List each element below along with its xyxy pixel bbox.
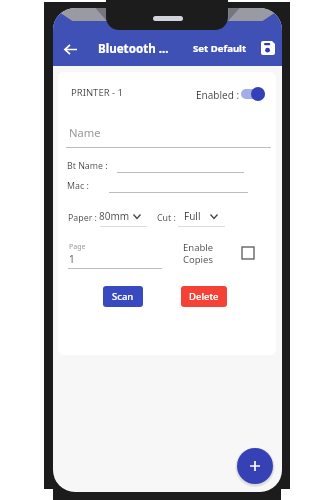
staticText: Set Default bbox=[193, 42, 247, 55]
staticText: Copies bbox=[183, 253, 213, 266]
staticText: Name bbox=[69, 125, 101, 140]
staticText: Paper : bbox=[68, 212, 97, 224]
staticText: Bt Name : bbox=[67, 160, 108, 172]
button[interactable]: Save bbox=[257, 37, 279, 59]
staticText: Cut : bbox=[157, 212, 176, 224]
staticText: Delete bbox=[189, 290, 219, 303]
staticText: PRINTER - 1 bbox=[71, 86, 124, 99]
button[interactable]: Scan bbox=[103, 286, 143, 307]
button[interactable]: Enabled toggle bbox=[241, 87, 265, 101]
button[interactable]: Back bbox=[57, 36, 83, 62]
button[interactable]: Set Default bbox=[188, 39, 252, 58]
staticText: Page bbox=[69, 242, 86, 252]
button[interactable]: Enable copies checkbox bbox=[242, 247, 254, 259]
button[interactable]: Add bbox=[237, 448, 273, 484]
staticText: 80mm bbox=[99, 209, 130, 223]
staticText: Enable bbox=[183, 241, 214, 254]
button[interactable]: Delete bbox=[181, 286, 227, 307]
button[interactable]: Full bbox=[184, 209, 218, 223]
staticText: Enabled : bbox=[196, 88, 240, 102]
staticText: Mac : bbox=[67, 180, 89, 192]
staticText: 1 bbox=[69, 252, 75, 266]
staticText: Scan bbox=[112, 290, 134, 303]
staticText: Full bbox=[184, 209, 201, 223]
button[interactable]: 80mm bbox=[99, 209, 141, 223]
staticText: Bluetooth ... bbox=[98, 41, 169, 57]
